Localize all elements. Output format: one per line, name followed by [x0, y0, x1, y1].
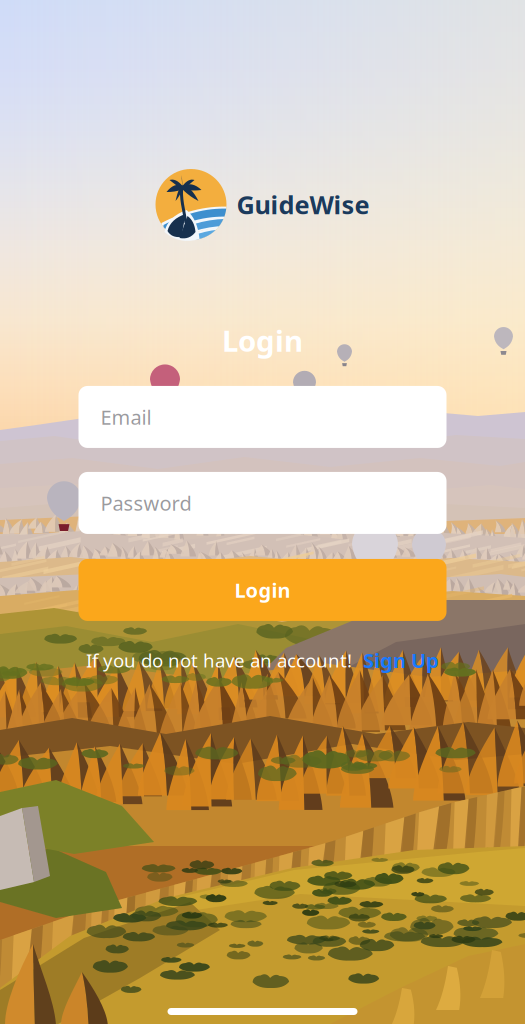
staticText: Password	[100, 490, 191, 516]
button[interactable]: Sign Up	[363, 647, 439, 674]
staticText: GuideWise	[236, 188, 369, 221]
button[interactable]: Password	[78, 472, 446, 534]
staticText: Login	[222, 321, 303, 360]
staticText: Email	[100, 404, 151, 430]
button[interactable]: Login	[78, 559, 446, 621]
staticText: If you do not have an account!	[86, 648, 352, 673]
staticText: Sign Up	[363, 647, 439, 674]
button[interactable]: Email	[78, 386, 446, 448]
staticText: Login	[234, 577, 290, 603]
